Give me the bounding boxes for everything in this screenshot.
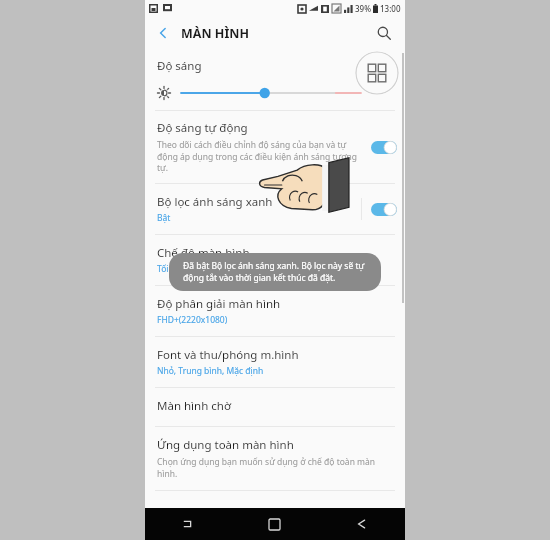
button[interactable]: Quay lại <box>318 508 405 540</box>
staticText: Theo dõi cách điều chỉnh độ sáng của bạn… <box>157 139 363 174</box>
staticText: Font và thu/phóng m.hình <box>157 347 299 363</box>
staticText: 39% <box>355 3 371 14</box>
button[interactable]: Độ sáng tự động <box>145 111 405 183</box>
staticText: Bộ lọc ánh sáng xanh <box>157 194 273 210</box>
staticText: Chọn ứng dụng bạn muốn sử dụng ở chế độ … <box>157 456 395 480</box>
button[interactable]: Font và thu/phóng m.hình <box>145 337 405 387</box>
staticText: Tối ưu hiển thị <box>157 263 215 275</box>
staticText: Màn hình chờ <box>157 398 231 414</box>
staticText: Độ phân giải màn hình <box>157 296 281 312</box>
staticText: 13:00 <box>380 3 401 14</box>
button[interactable]: Bộ lọc ánh sáng xanh <box>145 184 405 234</box>
button[interactable]: Tìm kiếm <box>371 20 397 46</box>
staticText: Ứng dụng toàn màn hình <box>157 437 294 453</box>
staticText: Đã bật Bộ lọc ánh sáng xanh. Bộ lọc này … <box>183 260 367 284</box>
staticText: MÀN HÌNH <box>181 25 250 42</box>
button[interactable]: Độ sáng <box>145 49 405 110</box>
staticText: Độ sáng <box>157 58 202 74</box>
staticText: Chế độ màn hình <box>157 245 250 261</box>
button[interactable]: Màn hình chính <box>231 508 318 540</box>
button[interactable]: Màn hình chờ <box>145 388 405 426</box>
staticText: FHD+(2220x1080) <box>157 314 228 326</box>
button[interactable]: Bật/tắt <box>371 202 397 217</box>
button[interactable]: Bật/tắt <box>371 140 397 155</box>
button[interactable]: Chế độ màn hình <box>145 235 405 285</box>
button[interactable]: Gần đây <box>145 508 231 540</box>
button[interactable]: Độ phân giải màn hình <box>145 286 405 336</box>
button[interactable]: Cài đặt nhanh độ sáng <box>355 51 399 95</box>
staticText: Nhỏ, Trung bình, Mặc định <box>157 365 264 377</box>
button[interactable]: Quay lại <box>151 21 175 45</box>
button[interactable]: Ứng dụng toàn màn hình <box>145 427 405 490</box>
staticText: Bật <box>157 212 171 224</box>
staticText: Độ sáng tự động <box>157 120 248 136</box>
